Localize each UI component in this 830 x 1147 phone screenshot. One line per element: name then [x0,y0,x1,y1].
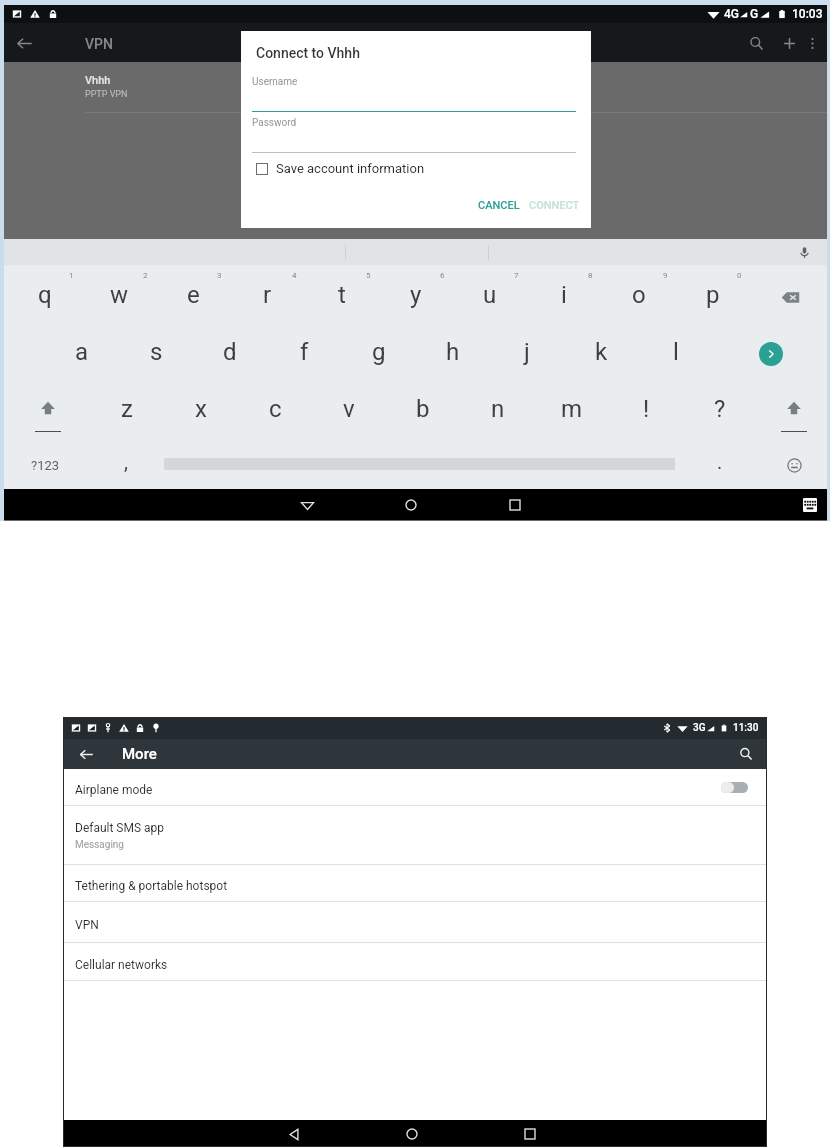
button[interactable]: c [238,383,312,439]
button[interactable]: CANCEL [478,199,520,212]
button[interactable]: Recents [498,492,532,518]
button[interactable]: ! [609,383,683,439]
button[interactable]: x [164,383,238,439]
button[interactable]: Switch keyboard [803,498,817,512]
button[interactable]: Default SMS app [63,806,767,864]
button[interactable]: , [96,441,156,489]
button[interactable]: Recents [513,1121,547,1147]
button[interactable]: Cellular networks [63,943,767,980]
staticText: 9 [663,271,668,280]
staticText: u [483,281,497,309]
staticText: m [561,395,583,423]
staticText: PPTP VPN [85,89,128,100]
staticText: l [673,338,679,366]
staticText: Vhhh [85,74,111,87]
staticText: f [300,338,309,366]
button[interactable]: r [230,269,304,325]
staticText: Save account information [276,161,425,176]
button[interactable]: Search [725,739,767,769]
staticText: Airplane mode [75,783,153,797]
staticText: e [187,281,200,309]
button[interactable]: Backspace [753,269,827,325]
staticText: 3 [217,271,222,280]
staticText: 4 [292,271,297,280]
staticText: 10:03 [792,7,823,21]
button[interactable]: p [676,269,750,325]
button[interactable]: n [461,383,535,439]
button[interactable]: j [490,326,564,382]
button[interactable]: u [453,269,527,325]
button[interactable]: ?123 [10,441,80,489]
staticText: Password [252,117,297,129]
button[interactable]: o [602,269,676,325]
staticText: 0 [737,271,742,280]
button[interactable]: Shift [757,383,830,439]
button[interactable]: VPN [63,902,767,942]
button[interactable]: e [156,269,230,325]
staticText: 2 [143,271,148,280]
button[interactable]: k [564,326,638,382]
staticText: . [717,450,723,473]
button[interactable]: CONNECT [529,199,580,212]
button[interactable]: a [45,326,119,382]
button[interactable]: Emoji [762,441,826,489]
staticText: q [38,281,52,309]
button[interactable]: y [379,269,453,325]
staticText: 11:30 [733,722,759,734]
staticText: n [491,395,505,423]
button[interactable]: Save account information [256,159,425,178]
staticText: Connect to Vhhh [256,45,360,61]
staticText: x [195,395,207,423]
staticText: G [750,7,759,21]
button[interactable]: Search [739,26,773,60]
button[interactable]: Enter [734,326,808,382]
button[interactable]: More options [795,26,829,60]
button[interactable]: Back [7,26,41,60]
button[interactable]: Tethering & portable hotspot [63,865,767,901]
staticText: r [263,281,272,309]
button[interactable]: g [342,326,416,382]
button[interactable]: ? [683,383,757,439]
button[interactable]: Voice input [798,246,811,259]
staticText: z [121,395,133,423]
button[interactable]: . [690,441,750,489]
staticText: ?123 [31,458,60,473]
staticText: v [343,395,355,423]
staticText: 5 [366,271,371,280]
button[interactable]: Airplane mode [63,769,767,805]
button[interactable]: f [267,326,341,382]
button[interactable]: i [527,269,601,325]
button[interactable]: h [416,326,490,382]
button[interactable]: Shift [11,383,85,439]
button[interactable]: d [193,326,267,382]
button[interactable]: b [386,383,460,439]
button[interactable]: Back [63,739,109,769]
button[interactable]: Home [395,1121,429,1147]
button[interactable]: l [639,326,713,382]
staticText: VPN [75,918,99,932]
button[interactable]: q [8,269,82,325]
staticText: h [446,338,460,366]
button[interactable]: Back [290,492,324,518]
staticText: d [223,338,237,366]
staticText: t [338,281,346,309]
button[interactable]: v [312,383,386,439]
button[interactable]: Add [772,26,806,60]
button[interactable]: Home [394,492,428,518]
staticText: g [372,338,386,366]
staticText: , [124,450,128,473]
staticText: c [269,395,282,423]
button[interactable]: Space [154,441,694,489]
button[interactable]: w [82,269,156,325]
staticText: 4G [724,7,739,21]
staticText: b [416,395,430,423]
button[interactable]: z [90,383,164,439]
button[interactable]: t [305,269,379,325]
button[interactable]: m [535,383,609,439]
staticText: Username [252,76,298,88]
button[interactable]: Back [277,1121,311,1147]
staticText: k [595,338,608,366]
staticText: Messaging [75,839,124,851]
button[interactable]: s [119,326,193,382]
staticText: VPN [85,36,113,52]
